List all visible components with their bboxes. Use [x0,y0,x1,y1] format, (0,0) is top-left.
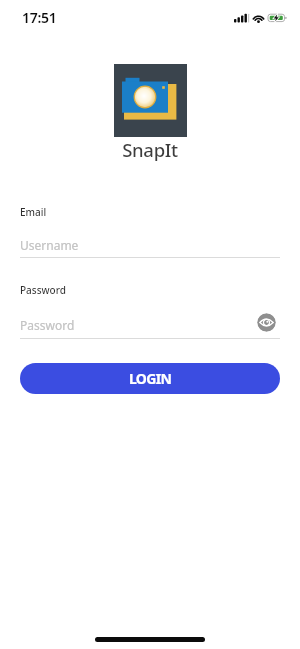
button[interactable]: LOGIN [20,363,280,394]
staticText: Email [20,205,47,219]
staticText: Password [20,317,75,333]
staticText: Username [20,237,79,253]
button[interactable] [257,313,276,332]
staticText: LOGIN [129,369,172,388]
button[interactable]: Username [20,232,280,258]
staticText: SnapIt [0,137,300,162]
button[interactable]: Password [20,312,280,338]
staticText: 17:51 [22,8,57,27]
staticText: Password [20,283,66,297]
